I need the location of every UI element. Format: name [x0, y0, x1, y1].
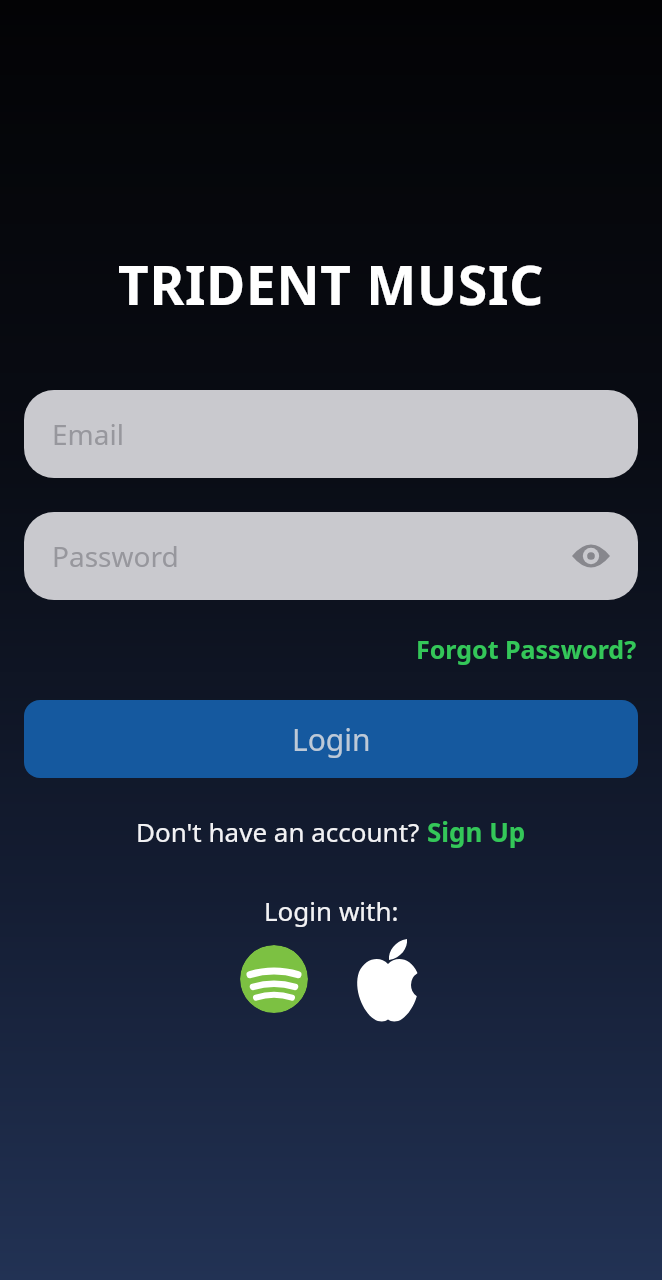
staticText: Don't have an account? — [136, 814, 427, 849]
button[interactable]: Sign Up — [427, 814, 526, 849]
staticText: Password — [52, 537, 179, 575]
button[interactable]: Email — [24, 390, 638, 478]
staticText: Login with: — [264, 893, 399, 928]
staticText: Email — [52, 415, 124, 453]
button[interactable] — [355, 938, 423, 1022]
button[interactable] — [240, 945, 308, 1013]
button[interactable]: Forgot Password? — [416, 632, 637, 666]
button[interactable]: Login — [24, 700, 638, 778]
button[interactable]: Password — [24, 512, 638, 600]
staticText: Login — [292, 719, 371, 760]
staticText: TRIDENT MUSIC — [118, 248, 545, 320]
